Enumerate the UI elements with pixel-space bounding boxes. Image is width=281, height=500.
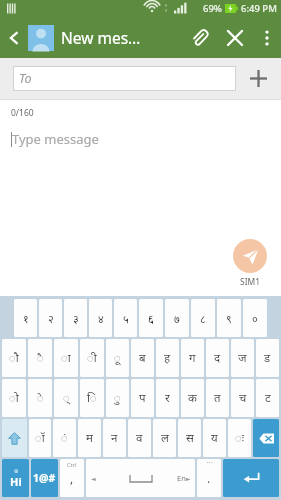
button[interactable]: ल xyxy=(153,419,176,457)
button[interactable]: Language Hi xyxy=(2,459,29,497)
staticText: ज xyxy=(238,350,247,366)
staticText: र xyxy=(165,390,170,406)
button[interactable]: Attach xyxy=(181,17,217,58)
button[interactable]: ा xyxy=(54,339,78,377)
staticText: ् xyxy=(63,390,70,406)
button[interactable]: More options xyxy=(253,17,281,58)
staticText: ८ xyxy=(200,311,206,326)
staticText: क xyxy=(188,390,197,406)
staticText: य xyxy=(211,430,218,446)
button[interactable]: व xyxy=(128,419,151,457)
button[interactable]: म xyxy=(78,419,101,457)
staticText: ► xyxy=(186,475,191,482)
button[interactable]: द xyxy=(206,339,229,377)
staticText: न xyxy=(111,430,118,446)
staticText: ॉ xyxy=(35,430,45,446)
staticText: SIM1 xyxy=(240,276,261,288)
button[interactable]: ७ xyxy=(165,299,189,337)
button[interactable]: ू xyxy=(106,339,129,377)
button[interactable]: ज xyxy=(231,339,254,377)
staticText: ो xyxy=(9,390,19,406)
button[interactable]: ड xyxy=(256,339,279,377)
staticText: द xyxy=(214,350,221,366)
staticText: ड xyxy=(264,350,271,366)
button[interactable]: ् xyxy=(54,379,78,417)
staticText: ७ xyxy=(174,311,180,326)
button[interactable]: ि xyxy=(80,379,104,417)
staticText: ा xyxy=(61,350,71,366)
button[interactable]: Comma xyxy=(60,459,84,497)
staticText: 69% xyxy=(203,2,222,15)
staticText: ९ xyxy=(226,311,232,326)
button[interactable]: ः xyxy=(228,419,251,457)
button[interactable]: ८ xyxy=(191,299,215,337)
button[interactable]: ९ xyxy=(217,299,241,337)
button[interactable]: Space xyxy=(86,459,195,497)
button[interactable]: ु xyxy=(106,379,129,417)
staticText: व xyxy=(136,430,143,446)
button[interactable]: Add recipient xyxy=(236,58,281,99)
staticText: New mes… xyxy=(61,27,181,48)
button[interactable]: ५ xyxy=(114,299,137,337)
staticText: ⋯ xyxy=(206,459,213,467)
staticText: प xyxy=(139,390,146,406)
staticText: ौ xyxy=(9,350,19,366)
button[interactable]: स xyxy=(178,419,201,457)
button[interactable]: ी xyxy=(80,339,104,377)
staticText: ६ xyxy=(148,311,154,326)
button[interactable]: ै xyxy=(28,339,52,377)
button[interactable]: ॉ xyxy=(29,419,51,457)
button[interactable]: २ xyxy=(39,299,62,337)
button[interactable]: ६ xyxy=(139,299,163,337)
staticText: 6:49 PM xyxy=(241,2,277,15)
button[interactable]: Period xyxy=(197,459,221,497)
staticText: To xyxy=(19,70,32,87)
button[interactable]: ह xyxy=(156,339,179,377)
button[interactable]: र xyxy=(156,379,179,417)
button[interactable]: त xyxy=(206,379,229,417)
button[interactable]: To xyxy=(13,66,236,91)
staticText: ट xyxy=(265,390,271,406)
button[interactable]: च xyxy=(231,379,254,417)
button[interactable]: ३ xyxy=(64,299,87,337)
button[interactable]: य xyxy=(203,419,226,457)
button[interactable]: १ xyxy=(14,299,37,337)
button[interactable]: Shift xyxy=(2,419,27,457)
button[interactable]: Symbols xyxy=(31,459,58,497)
button[interactable]: ो xyxy=(2,379,26,417)
staticText: ु xyxy=(114,390,121,406)
staticText: ३ xyxy=(73,311,79,326)
staticText: ि xyxy=(87,390,97,406)
staticText: , xyxy=(70,470,74,486)
button[interactable]: Back xyxy=(0,17,28,58)
button[interactable]: न xyxy=(103,419,126,457)
button[interactable]: े xyxy=(28,379,52,417)
button[interactable]: ट xyxy=(256,379,279,417)
staticText: े xyxy=(37,390,44,406)
staticText: 1@# xyxy=(33,471,56,485)
button[interactable]: Close xyxy=(217,17,253,58)
staticText: स xyxy=(186,430,194,446)
button[interactable]: ४ xyxy=(89,299,112,337)
button[interactable]: Send via SIM1 xyxy=(233,239,267,273)
button[interactable]: क xyxy=(181,379,204,417)
staticText: त xyxy=(214,390,221,406)
button[interactable]: Backspace xyxy=(253,419,279,457)
staticText: च xyxy=(239,390,247,406)
staticText: ल xyxy=(161,430,169,446)
staticText: १ xyxy=(23,311,29,326)
staticText: ै xyxy=(37,350,44,366)
staticText: ू xyxy=(114,350,121,366)
staticText: ⊛ xyxy=(14,468,19,474)
button[interactable]: ब xyxy=(131,339,154,377)
staticText: En xyxy=(177,473,186,483)
staticText: ५ xyxy=(123,311,129,326)
button[interactable]: ग xyxy=(181,339,204,377)
button[interactable]: Enter xyxy=(223,459,279,497)
button[interactable]: प xyxy=(131,379,154,417)
button[interactable]: ० xyxy=(243,299,267,337)
staticText: ० xyxy=(252,311,258,326)
staticText: ◄ xyxy=(91,475,96,482)
button[interactable]: ौ xyxy=(2,339,26,377)
button[interactable]: ं xyxy=(53,419,76,457)
